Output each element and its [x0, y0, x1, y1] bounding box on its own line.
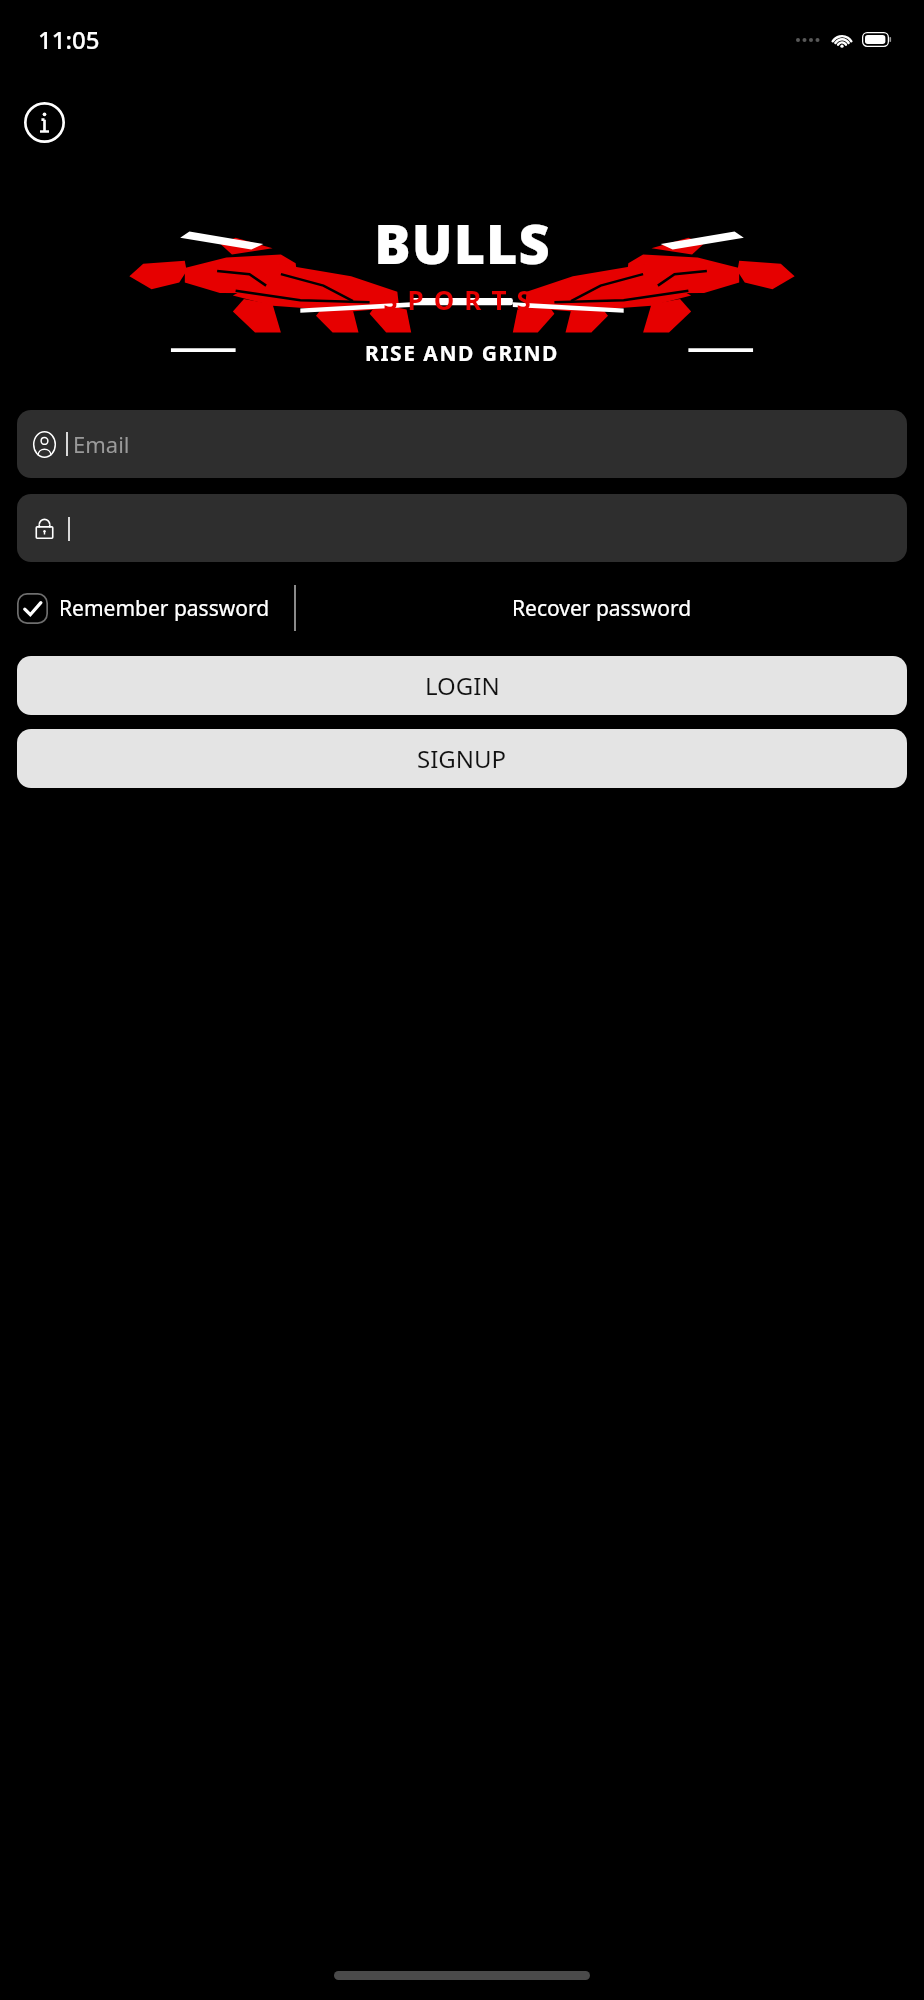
- staticText: LOGIN: [425, 669, 500, 702]
- staticText: BULLS: [374, 206, 551, 280]
- staticText: RISE AND GRIND: [365, 339, 559, 368]
- button[interactable]: Remember password: [17, 591, 270, 626]
- staticText: SPORTS: [383, 282, 541, 317]
- button[interactable]: Email: [17, 410, 907, 478]
- button[interactable]: [17, 494, 907, 562]
- button[interactable]: LOGIN: [17, 656, 907, 715]
- staticText: Email: [73, 429, 130, 459]
- staticText: 11:05: [38, 23, 100, 56]
- staticText: Recover password: [512, 594, 692, 623]
- staticText: Remember password: [59, 594, 270, 623]
- button[interactable]: Recover password: [506, 590, 698, 627]
- staticText: SIGNUP: [417, 742, 507, 775]
- button[interactable]: Information: [22, 100, 66, 144]
- button[interactable]: SIGNUP: [17, 729, 907, 788]
